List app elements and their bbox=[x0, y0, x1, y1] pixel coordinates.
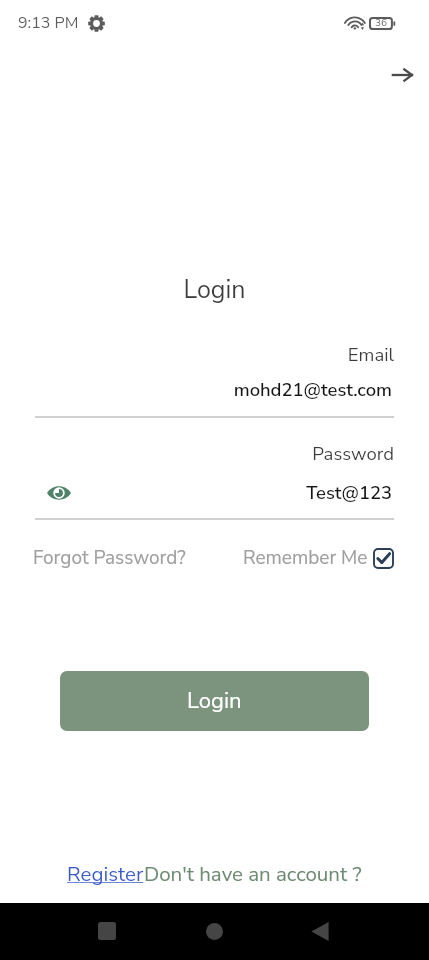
staticText: Don't have an account ? bbox=[144, 860, 362, 888]
staticText: Test@123 bbox=[77, 480, 392, 505]
staticText: 36 bbox=[375, 16, 387, 30]
staticText: mohd21@test.com bbox=[35, 377, 392, 402]
staticText: Email bbox=[35, 342, 394, 367]
button[interactable]: Show password bbox=[41, 474, 77, 510]
staticText: Remember Me bbox=[243, 545, 368, 571]
staticText: 9:13 PM bbox=[18, 12, 79, 34]
staticText: Login bbox=[187, 686, 242, 716]
button[interactable]: Recent apps bbox=[83, 907, 131, 955]
staticText: Login bbox=[0, 273, 429, 307]
button[interactable]: Home bbox=[190, 907, 238, 955]
button[interactable]: Login bbox=[60, 671, 369, 731]
button[interactable]: Register bbox=[67, 860, 144, 888]
button[interactable]: Remember Me bbox=[243, 545, 394, 571]
button[interactable]: Forgot Password? bbox=[33, 545, 186, 571]
button[interactable]: Back bbox=[296, 907, 344, 955]
button[interactable]: Next bbox=[385, 58, 419, 92]
staticText: Password bbox=[35, 441, 394, 466]
